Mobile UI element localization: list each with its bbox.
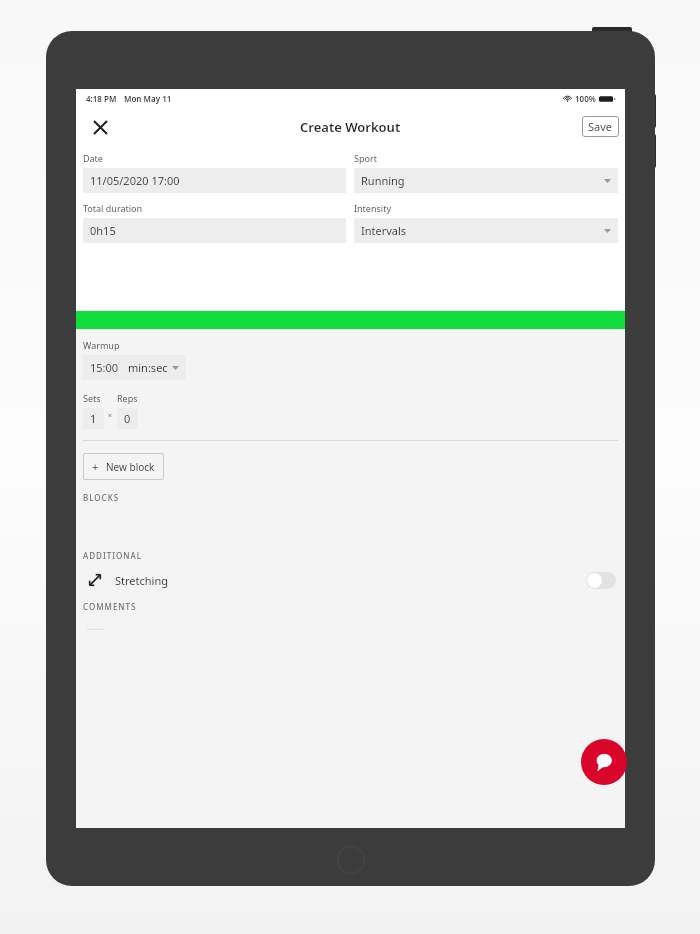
- staticText: 0: [124, 411, 131, 426]
- button[interactable]: 0: [117, 408, 138, 429]
- button[interactable]: 15:00: [83, 355, 186, 380]
- staticText: Date: [83, 152, 103, 164]
- staticText: Running: [361, 173, 405, 188]
- button[interactable]: Stretching toggle: [586, 572, 616, 589]
- staticText: 100%: [575, 93, 596, 104]
- staticText: BLOCKS: [83, 492, 120, 503]
- staticText: Intervals: [361, 223, 407, 238]
- button[interactable]: Stretching: [83, 567, 618, 593]
- button[interactable]: Save: [582, 116, 619, 137]
- button[interactable]: Running: [354, 168, 618, 193]
- button[interactable]: Intervals: [354, 218, 618, 243]
- staticText: 15:00: [90, 360, 119, 375]
- button[interactable]: 0h15: [83, 218, 346, 243]
- staticText: min:sec: [128, 360, 168, 375]
- staticText: 4:18 PM: [86, 93, 117, 104]
- staticText: Total duration: [83, 202, 143, 214]
- staticText: New block: [106, 460, 155, 474]
- staticText: ×: [108, 411, 113, 421]
- staticText: Sets: [83, 392, 101, 404]
- staticText: Reps: [117, 392, 138, 404]
- staticText: +: [92, 459, 99, 474]
- staticText: Warmup: [83, 339, 120, 351]
- staticText: ADDITIONAL: [83, 550, 143, 561]
- staticText: 0h15: [90, 223, 116, 238]
- staticText: Intensity: [354, 202, 391, 214]
- button[interactable]: Chat: [581, 739, 627, 785]
- staticText: COMMENTS: [83, 601, 137, 612]
- staticText: Mon May 11: [124, 93, 172, 104]
- button[interactable]: 11/05/2020 17:00: [83, 168, 346, 193]
- staticText: 11/05/2020 17:00: [90, 173, 180, 188]
- button[interactable]: 1: [83, 408, 104, 429]
- button[interactable]: Close: [82, 109, 118, 145]
- staticText: 1: [90, 411, 97, 426]
- button[interactable]: +: [83, 453, 164, 480]
- staticText: ........: [87, 621, 105, 632]
- staticText: Save: [588, 119, 613, 134]
- staticText: Stretching: [115, 573, 168, 588]
- staticText: Sport: [354, 152, 377, 164]
- staticText: Create Workout: [300, 118, 401, 136]
